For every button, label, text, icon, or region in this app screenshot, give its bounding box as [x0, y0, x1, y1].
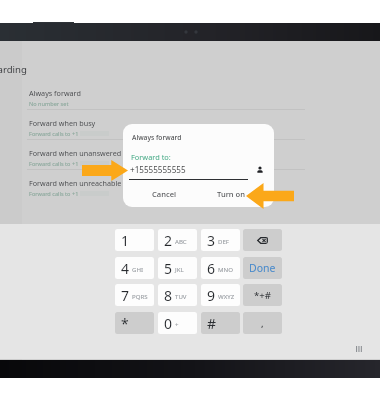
- staticText: Forward calls to +1: [29, 130, 79, 138]
- button[interactable]: 1: [115, 229, 154, 251]
- staticText: Always forward: [132, 133, 182, 142]
- button[interactable]: Pick contact: [256, 166, 264, 174]
- button[interactable]: Forward when unanswered: [22, 142, 322, 172]
- staticText: *: [121, 314, 129, 333]
- staticText: 4: [121, 259, 130, 278]
- staticText: 3: [207, 231, 216, 250]
- staticText: +: [175, 320, 179, 328]
- button[interactable]: Forward when unreachable: [22, 172, 322, 202]
- staticText: Forward calls to +1: [29, 160, 79, 168]
- button[interactable]: 2: [158, 229, 197, 251]
- staticText: 5: [164, 259, 173, 278]
- staticText: Done: [249, 261, 276, 275]
- button[interactable]: Turn on: [211, 186, 251, 202]
- staticText: 7: [121, 286, 130, 305]
- button[interactable]: Done: [243, 257, 282, 279]
- staticText: ,: [261, 317, 264, 330]
- staticText: 8: [164, 286, 173, 305]
- button[interactable]: Always forward: [22, 82, 322, 112]
- button[interactable]: 6: [201, 257, 240, 279]
- staticText: *+#: [254, 289, 271, 302]
- button[interactable]: 3: [201, 229, 240, 251]
- button[interactable]: 7: [115, 284, 154, 306]
- staticText: Turn on: [217, 189, 245, 199]
- staticText: 2: [164, 231, 173, 250]
- button[interactable]: Cancel: [147, 186, 182, 202]
- staticText: #: [207, 314, 217, 333]
- staticText: 9: [207, 286, 216, 305]
- staticText: MNO: [218, 265, 233, 273]
- staticText: PQRS: [132, 292, 148, 300]
- staticText: JKL: [175, 265, 184, 273]
- button[interactable]: *+#: [243, 284, 282, 306]
- button[interactable]: 9: [201, 284, 240, 306]
- staticText: 6: [207, 259, 216, 278]
- button[interactable]: Comma: [243, 312, 282, 334]
- staticText: +15555555555: [130, 164, 186, 175]
- staticText: Call forwarding: [0, 63, 27, 76]
- button[interactable]: 0: [158, 312, 197, 334]
- staticText: Cancel: [152, 189, 177, 199]
- staticText: ABC: [175, 237, 187, 245]
- staticText: DEF: [218, 237, 229, 245]
- button[interactable]: 4: [115, 257, 154, 279]
- button[interactable]: 5: [158, 257, 197, 279]
- button[interactable]: Backspace: [243, 229, 282, 251]
- button[interactable]: 8: [158, 284, 197, 306]
- button[interactable]: *: [115, 312, 154, 334]
- staticText: Forward when unanswered: [29, 148, 122, 158]
- staticText: GHI: [132, 265, 144, 273]
- staticText: Forward when busy: [29, 118, 96, 128]
- staticText: 0: [164, 314, 173, 333]
- staticText: Forward when unreachable: [29, 178, 122, 188]
- staticText: WXYZ: [218, 292, 235, 300]
- staticText: No number set: [29, 100, 69, 108]
- button[interactable]: #: [201, 312, 240, 334]
- staticText: Forward calls to +1: [29, 190, 79, 198]
- staticText: 1: [121, 231, 130, 250]
- staticText: TUV: [175, 292, 187, 300]
- staticText: Always forward: [29, 88, 81, 98]
- button[interactable]: Forward when busy: [22, 112, 322, 142]
- staticText: Forward to:: [131, 152, 171, 162]
